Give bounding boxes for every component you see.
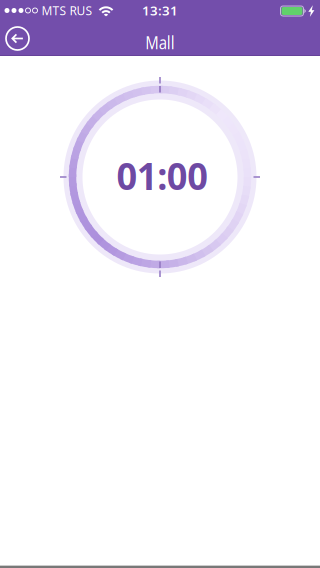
staticText: 01:00	[115, 151, 209, 200]
staticText: Mall	[141, 30, 178, 54]
button[interactable]: Back	[2, 23, 32, 53]
staticText: 13:31	[142, 1, 178, 19]
staticText: MTS RUS	[41, 2, 92, 18]
